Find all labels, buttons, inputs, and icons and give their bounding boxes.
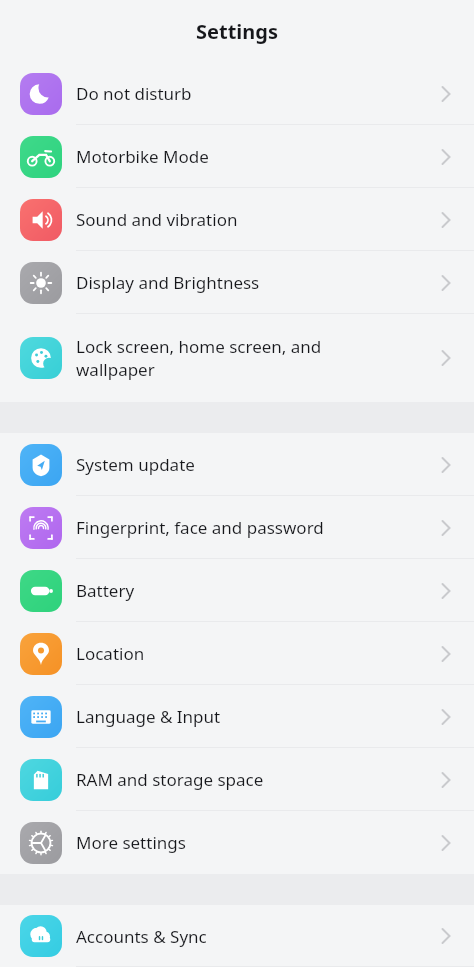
button[interactable]: Language & Input	[0, 685, 474, 748]
staticText: Battery	[76, 579, 434, 602]
staticText: Sound and vibration	[76, 208, 434, 231]
staticText: Settings	[196, 18, 278, 45]
staticText: System update	[76, 453, 434, 476]
button[interactable]: Display and Brightness	[0, 251, 474, 314]
staticText: Language & Input	[76, 705, 434, 728]
staticText: More settings	[76, 831, 434, 854]
staticText: RAM and storage space	[76, 768, 434, 791]
staticText: Location	[76, 642, 434, 665]
staticText: Display and Brightness	[76, 271, 434, 294]
button[interactable]: System update	[0, 433, 474, 496]
button[interactable]: Battery	[0, 559, 474, 622]
button[interactable]: Sound and vibration	[0, 188, 474, 251]
button[interactable]: Location	[0, 622, 474, 685]
staticText: Fingerprint, face and password	[76, 516, 434, 539]
staticText: Lock screen, home screen, and wallpaper	[76, 335, 434, 381]
button[interactable]: Motorbike Mode	[0, 125, 474, 188]
button[interactable]: Accounts & Sync	[0, 905, 474, 967]
staticText: Motorbike Mode	[76, 145, 434, 168]
button[interactable]: Fingerprint, face and password	[0, 496, 474, 559]
button[interactable]: More settings	[0, 811, 474, 874]
staticText: Accounts & Sync	[76, 925, 434, 948]
button[interactable]: Lock screen, home screen, and wallpaper	[0, 314, 474, 402]
button[interactable]: Do not disturb	[0, 62, 474, 125]
staticText: Do not disturb	[76, 82, 434, 105]
button[interactable]: RAM and storage space	[0, 748, 474, 811]
